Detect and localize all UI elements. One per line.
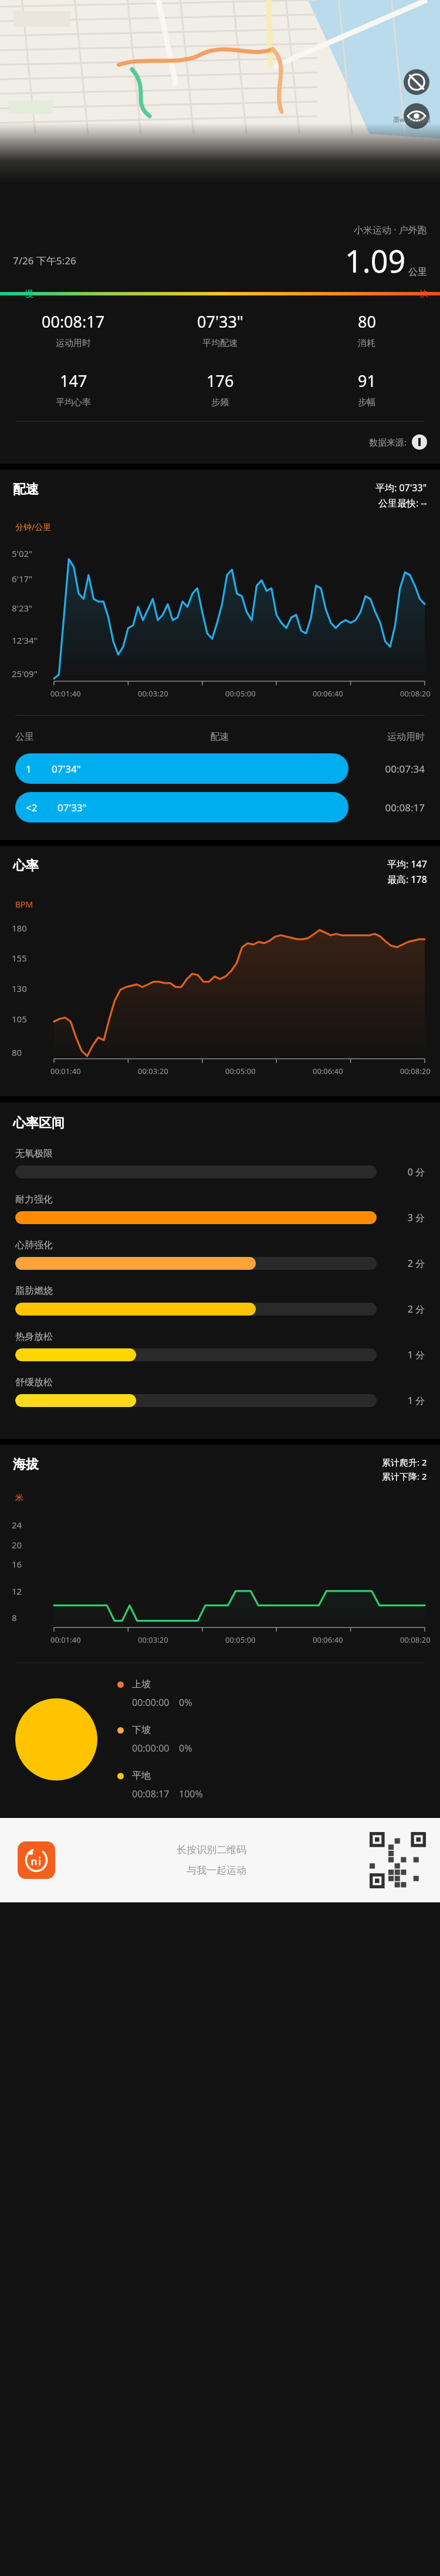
button[interactable]: 平地 — [117, 1770, 203, 1800]
staticText: 数据来源: — [369, 436, 407, 448]
staticText: 热身放松 — [15, 1331, 53, 1343]
staticText: 00:01:40 — [50, 1634, 81, 1645]
staticText: 与我一起运动 — [187, 1864, 246, 1877]
staticText: 长按识别二维码 — [177, 1844, 246, 1856]
staticText: 2 分 — [387, 1257, 425, 1270]
staticText: 5'02" — [12, 548, 54, 559]
staticText: 配速 — [13, 481, 375, 498]
staticText: 00:06:40 — [313, 1066, 343, 1076]
staticText: 07'33" — [197, 311, 243, 332]
button[interactable]: <2 — [15, 792, 425, 823]
staticText: 00:06:40 — [313, 1634, 343, 1645]
staticText: 00:00:00 — [132, 1696, 170, 1709]
staticText: 1 分 — [387, 1394, 425, 1407]
staticText: 00:08:17 — [132, 1787, 170, 1800]
staticText: 耐力强化 — [15, 1194, 53, 1205]
staticText: 累计下降: 2 — [382, 1470, 427, 1482]
staticText: 00:00:00 — [132, 1742, 170, 1755]
staticText: 平地 — [132, 1770, 151, 1782]
staticText: 8'23" — [12, 602, 54, 614]
staticText: 7/26 下午5:26 — [13, 254, 76, 267]
staticText: 小米运动 · 户外跑 — [354, 223, 427, 236]
staticText: 运动用时 — [288, 731, 425, 743]
staticText: 下坡 — [132, 1724, 151, 1736]
staticText: 米 — [15, 1493, 23, 1503]
staticText: 步频 — [211, 397, 229, 408]
staticText: 100% — [179, 1787, 203, 1800]
staticText: 180 — [12, 922, 54, 934]
staticText: 105 — [12, 1013, 54, 1025]
button[interactable]: 上坡 — [117, 1678, 192, 1709]
staticText: 80 — [358, 311, 376, 332]
staticText: 3 分 — [387, 1211, 425, 1224]
staticText: 24 — [12, 1519, 54, 1531]
staticText: 消耗 — [358, 338, 375, 349]
staticText: 平均: 147 — [387, 858, 427, 871]
staticText: 130 — [12, 983, 54, 994]
staticText: 00:08:20 — [400, 688, 431, 699]
staticText: 0 分 — [387, 1165, 425, 1178]
staticText: 配速 — [151, 731, 288, 743]
staticText: 2 分 — [387, 1303, 425, 1316]
staticText: 平均心率 — [56, 397, 91, 408]
staticText: 147 — [60, 370, 87, 392]
button[interactable]: Toggle map layer — [404, 103, 429, 129]
staticText: 00:03:20 — [138, 1066, 168, 1076]
staticText: 1.09 — [345, 240, 406, 281]
button[interactable]: 耐力强化 — [0, 1192, 440, 1238]
staticText: 0% — [179, 1696, 192, 1709]
staticText: 07'33" — [57, 801, 87, 814]
staticText: 00:08:17 — [360, 801, 425, 814]
staticText: 00:07:34 — [360, 762, 425, 776]
staticText: 00:05:00 — [225, 688, 256, 699]
staticText: 步幅 — [358, 397, 375, 408]
staticText: 6'17" — [12, 573, 54, 584]
staticText: 心率 — [13, 858, 387, 874]
staticText: 16 — [12, 1558, 54, 1570]
staticText: 80 — [12, 1046, 54, 1058]
staticText: 平均配速 — [202, 338, 238, 349]
staticText: 25'09" — [12, 668, 54, 679]
staticText: 最高: 178 — [387, 873, 427, 886]
staticText: 20 — [12, 1539, 54, 1551]
staticText: 00:03:20 — [138, 688, 168, 699]
button[interactable]: 脂肪燃烧 — [0, 1284, 440, 1330]
staticText: 心肺强化 — [15, 1239, 53, 1251]
staticText: <2 — [26, 801, 38, 814]
staticText: 00:01:40 — [50, 688, 81, 699]
staticText: 07'34" — [52, 762, 81, 776]
staticText: 12'34" — [12, 634, 54, 646]
staticText: 00:08:17 — [42, 311, 105, 332]
staticText: 00:01:40 — [50, 1066, 81, 1076]
staticText: 心率区间 — [13, 1115, 65, 1131]
button[interactable]: 下坡 — [117, 1724, 192, 1755]
staticText: 00:05:00 — [225, 1634, 256, 1645]
staticText: 00:06:40 — [313, 688, 343, 699]
staticText: 00:03:20 — [138, 1634, 168, 1645]
button[interactable]: 热身放松 — [0, 1330, 440, 1375]
button[interactable]: 舒缓放松 — [0, 1375, 440, 1421]
button[interactable]: 心肺强化 — [0, 1238, 440, 1284]
staticText: 累计爬升: 2 — [382, 1456, 427, 1468]
staticText: 运动用时 — [56, 338, 91, 349]
staticText: 上坡 — [132, 1678, 151, 1690]
button[interactable]: 无氧极限 — [0, 1147, 440, 1192]
staticText: 1 分 — [387, 1348, 425, 1361]
staticText: 公里最快: -- — [378, 497, 427, 509]
staticText: 快 — [419, 288, 428, 300]
staticText: 平均: 07'33" — [375, 481, 427, 494]
button[interactable]: Satellite view — [404, 69, 429, 95]
staticText: 墨writer地图 — [393, 115, 431, 124]
button[interactable]: Mi Fit — [18, 1841, 55, 1879]
staticText: 91 — [358, 370, 376, 392]
staticText: 00:08:20 — [400, 1634, 431, 1645]
staticText: 155 — [12, 952, 54, 964]
staticText: BPM — [15, 899, 33, 910]
staticText: 12 — [12, 1585, 54, 1597]
staticText: 00:08:20 — [400, 1066, 431, 1076]
staticText: 1 — [26, 762, 32, 776]
button[interactable]: 1 — [15, 753, 425, 784]
staticText: 海拔 — [13, 1456, 382, 1473]
staticText: 8 — [12, 1612, 54, 1623]
staticText: 0% — [179, 1742, 192, 1755]
